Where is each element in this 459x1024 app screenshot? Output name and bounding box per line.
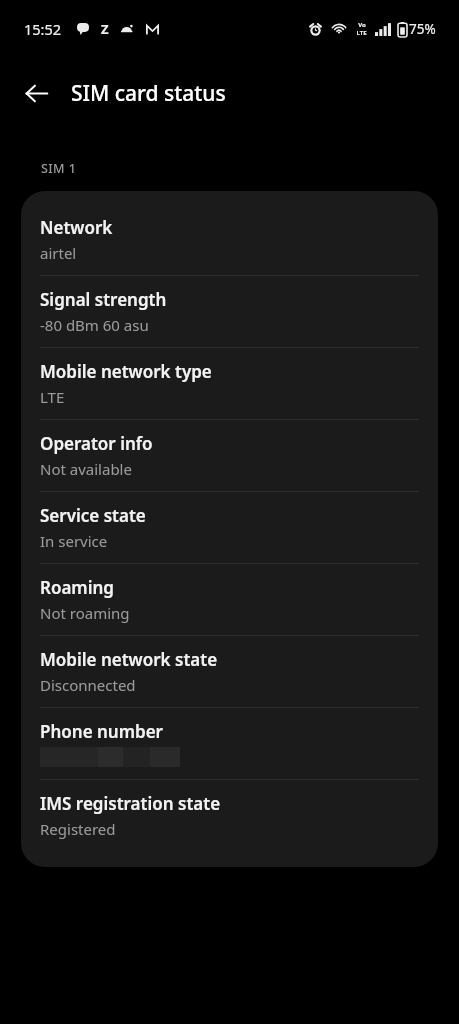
staticText: Not available xyxy=(40,459,132,479)
staticText: Mobile network type xyxy=(40,360,212,383)
staticText: Signal strength xyxy=(40,288,167,311)
staticText: IMS registration state xyxy=(40,792,221,815)
staticText: LTE xyxy=(40,387,65,407)
button[interactable]: Phone number xyxy=(21,708,438,779)
button[interactable]: Mobile network type xyxy=(21,348,438,419)
staticText: LTE xyxy=(356,29,367,37)
button[interactable]: Service state xyxy=(21,492,438,563)
staticText: Vo xyxy=(358,21,366,29)
staticText: In service xyxy=(40,531,108,551)
staticText: SIM 1 xyxy=(41,160,77,177)
staticText: -80 dBm 60 asu xyxy=(40,315,149,335)
button[interactable]: Back xyxy=(12,69,60,117)
staticText: Operator info xyxy=(40,432,153,455)
button[interactable]: IMS registration state xyxy=(21,780,438,851)
staticText: Z xyxy=(101,20,109,38)
staticText: SIM card status xyxy=(71,79,226,108)
staticText: 15:52 xyxy=(24,19,62,39)
button[interactable]: Operator info xyxy=(21,420,438,491)
button[interactable]: Network xyxy=(21,204,438,275)
staticText: Not roaming xyxy=(40,603,130,623)
staticText: Mobile network state xyxy=(40,648,218,671)
button[interactable]: Mobile network state xyxy=(21,636,438,707)
staticText: airtel xyxy=(40,243,77,263)
button[interactable]: Roaming xyxy=(21,564,438,635)
staticText: 75% xyxy=(409,20,436,38)
staticText: Phone number xyxy=(40,720,163,743)
staticText: Service state xyxy=(40,504,146,527)
staticText: Roaming xyxy=(40,576,114,599)
button[interactable]: Signal strength xyxy=(21,276,438,347)
staticText: Disconnected xyxy=(40,675,136,695)
staticText: Registered xyxy=(40,819,116,839)
staticText: Network xyxy=(40,216,113,239)
